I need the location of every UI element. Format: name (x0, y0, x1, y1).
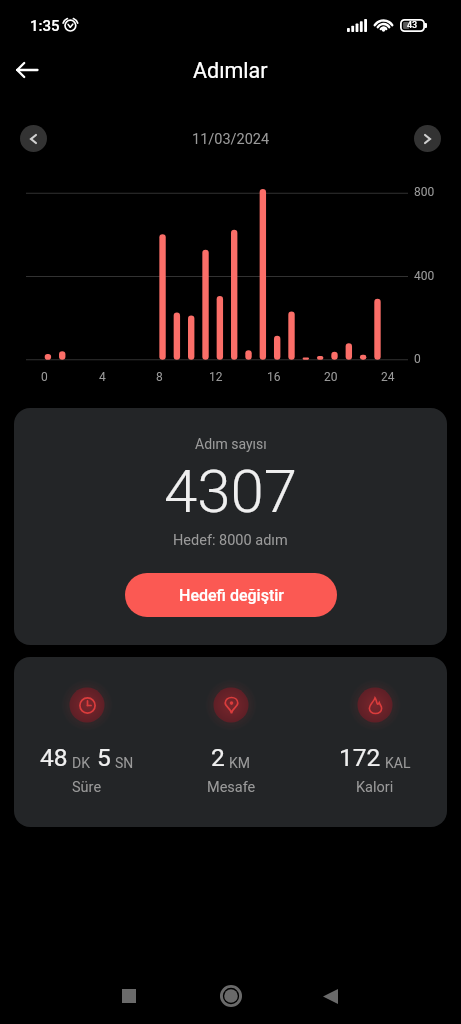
staticText: 11/03/2024 (192, 131, 270, 148)
staticText: 0 (414, 352, 421, 366)
staticText: 20 (324, 370, 338, 384)
staticText: 5 (97, 743, 111, 772)
staticText: 48 (40, 743, 68, 772)
staticText: 43 (407, 20, 418, 31)
staticText: Hedef: 8000 adım (173, 532, 288, 549)
button[interactable]: Back (5, 48, 49, 92)
staticText: 8 (156, 370, 163, 384)
staticText: 800 (414, 185, 435, 199)
staticText: SN (115, 755, 134, 771)
staticText: 172 (339, 743, 381, 772)
staticText: Adımlar (193, 58, 268, 83)
staticText: 16 (267, 370, 281, 384)
button[interactable]: Recents (105, 972, 153, 1020)
staticText: 2 (211, 743, 225, 772)
staticText: Hedefi değiştir (179, 586, 284, 605)
staticText: Adım sayısı (195, 436, 267, 452)
staticText: 24 (381, 370, 395, 384)
button[interactable]: Previous day (20, 125, 47, 152)
staticText: Kalori (356, 779, 394, 796)
staticText: DK (72, 755, 90, 771)
staticText: KAL (385, 755, 411, 771)
staticText: 400 (414, 269, 435, 283)
staticText: KM (229, 755, 251, 771)
staticText: Süre (72, 779, 102, 796)
button[interactable]: Home (207, 972, 255, 1020)
button[interactable]: Back (306, 972, 354, 1020)
staticText: 4307 (164, 456, 298, 526)
staticText: 0 (41, 370, 48, 384)
staticText: 4 (99, 370, 106, 384)
button[interactable]: Hedefi değiştir (125, 573, 337, 617)
staticText: 1:35 (30, 17, 60, 35)
staticText: 12 (209, 370, 223, 384)
button[interactable]: Next day (414, 125, 441, 152)
staticText: Mesafe (207, 779, 256, 796)
